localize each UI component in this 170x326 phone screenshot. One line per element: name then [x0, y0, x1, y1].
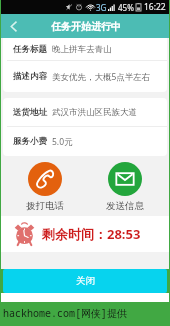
button[interactable]: 描述内容 — [3, 61, 167, 92]
button[interactable]: 服务小费 — [3, 127, 167, 156]
button[interactable]: Send message — [97, 162, 153, 212]
button[interactable]: 关闭 — [3, 269, 167, 293]
staticText: 武汉市洪山区民族大道 — [52, 107, 137, 118]
button[interactable]: Back — [1, 14, 25, 38]
staticText: 任务标题 — [13, 44, 47, 55]
staticText: 描述内容 — [13, 71, 47, 82]
button[interactable]: 任务标题 — [3, 38, 167, 61]
staticText: 发送信息 — [106, 200, 144, 212]
staticText: 任务开始进行中 — [51, 20, 121, 33]
staticText: 关闭 — [76, 275, 95, 287]
staticText: 45% — [118, 2, 134, 13]
staticText: 服务小费 — [13, 136, 47, 147]
button[interactable]: 送货地址 — [3, 98, 167, 127]
other: Send message — [108, 162, 142, 196]
other: Call — [28, 162, 62, 196]
button[interactable]: Call — [17, 162, 73, 212]
staticText: 3G — [96, 2, 107, 13]
staticText: 送货地址 — [13, 107, 47, 118]
staticText: 剩余时间：28:53 — [42, 225, 141, 243]
staticText: 16:22 — [144, 1, 166, 13]
staticText: 拨打电话 — [26, 200, 64, 212]
staticText: 5.0元 — [52, 136, 73, 148]
staticText: 晚上拼车去青山 — [52, 44, 112, 55]
staticText: 美女优先，大概5点半左右 — [52, 71, 151, 83]
staticText: hackhome.com[网侠]提供 — [3, 306, 127, 320]
